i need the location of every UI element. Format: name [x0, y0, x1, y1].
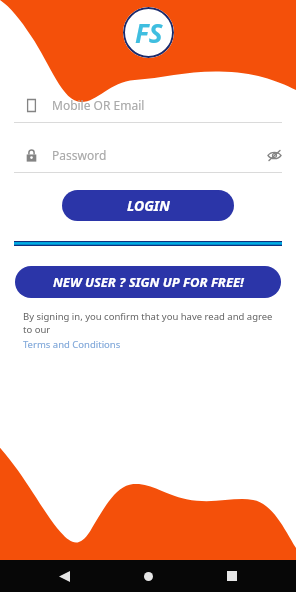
button[interactable]: Mobile OR Email field	[0, 92, 296, 123]
staticText: By signing in, you confirm that you have…	[23, 310, 282, 336]
staticText: LOGIN	[127, 196, 170, 215]
button[interactable]: Recent apps	[212, 560, 252, 592]
button[interactable]: NEW USER ? SIGN UP FOR FREE!	[15, 266, 281, 298]
staticText: Mobile OR Email	[52, 97, 145, 113]
button[interactable]: LOGIN	[62, 190, 234, 221]
button[interactable]: Password field	[0, 142, 296, 173]
staticText: FS	[135, 15, 163, 50]
staticText: NEW USER ? SIGN UP FOR FREE!	[53, 273, 244, 291]
button[interactable]: Home	[128, 560, 168, 592]
button[interactable]: Back	[44, 560, 84, 592]
other: Show password	[267, 148, 282, 163]
staticText: Password	[52, 147, 107, 163]
button[interactable]: Terms and Conditions	[23, 338, 121, 351]
